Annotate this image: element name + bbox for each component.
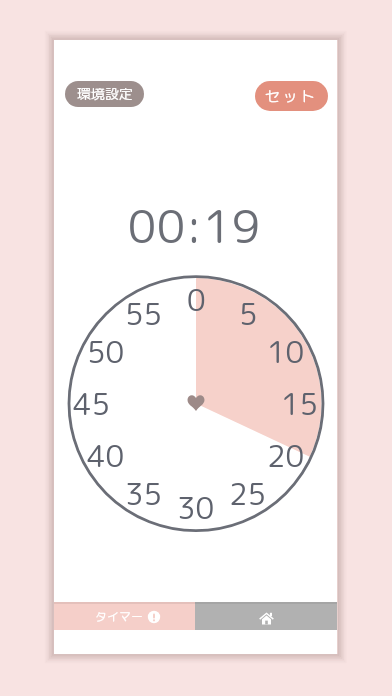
staticText: 25	[229, 473, 267, 515]
staticText: 55	[125, 293, 163, 335]
staticText: 環境設定	[77, 84, 133, 104]
button[interactable]	[195, 602, 337, 630]
staticText: 35	[125, 473, 163, 515]
staticText: 40	[87, 435, 125, 477]
staticText: 30	[177, 487, 215, 529]
button[interactable]: 環境設定	[65, 81, 144, 107]
staticText: 50	[87, 331, 125, 373]
staticText: 20	[267, 435, 305, 477]
staticText: 15	[281, 383, 319, 425]
button[interactable]: タイマー	[54, 602, 195, 630]
staticText: 45	[73, 383, 111, 425]
staticText: 5	[239, 293, 258, 335]
staticText: タイマー	[95, 608, 144, 625]
staticText: 10	[267, 331, 305, 373]
button[interactable]: セット	[255, 81, 328, 111]
staticText: 00:19	[128, 195, 261, 255]
staticText: 0	[187, 279, 206, 321]
staticText: セット	[265, 86, 318, 107]
